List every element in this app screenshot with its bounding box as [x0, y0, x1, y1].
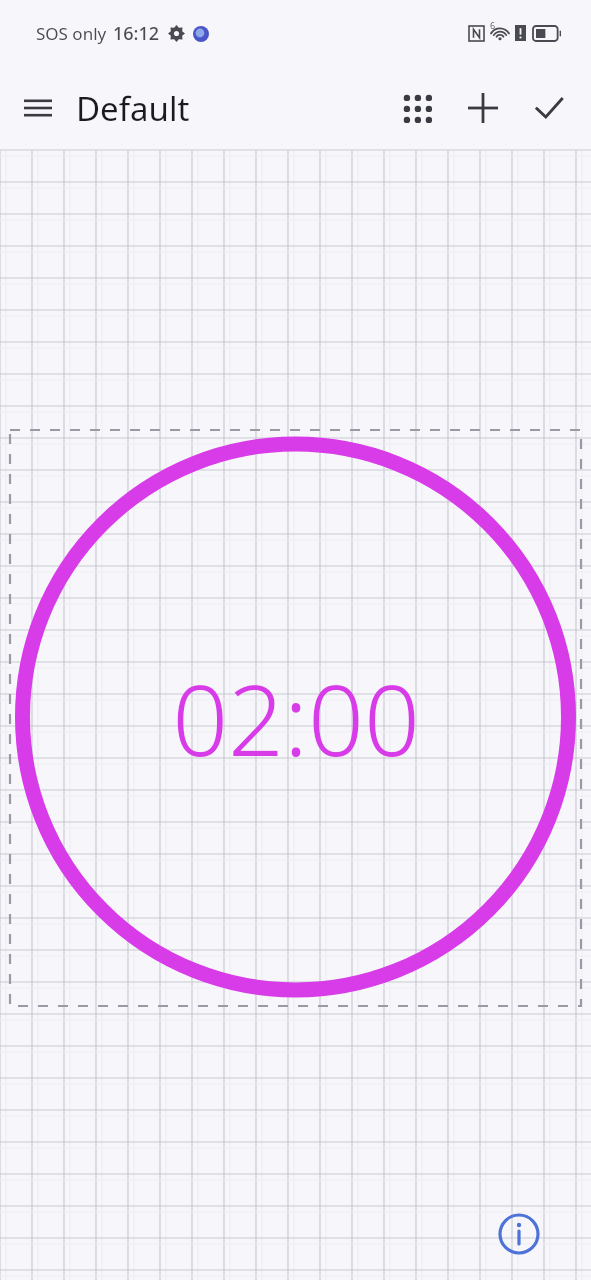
button[interactable]: Add — [455, 80, 511, 136]
staticText: 02:00 — [172, 651, 420, 784]
button[interactable]: Info — [497, 1212, 541, 1256]
button[interactable]: Confirm — [521, 80, 577, 136]
staticText: 16:12 — [113, 21, 160, 46]
button[interactable]: Open navigation drawer — [12, 82, 64, 134]
staticText: SOS only — [36, 22, 107, 45]
staticText: Default — [76, 86, 190, 131]
staticText: 6 — [490, 19, 496, 31]
button[interactable]: Grid view — [389, 80, 445, 136]
